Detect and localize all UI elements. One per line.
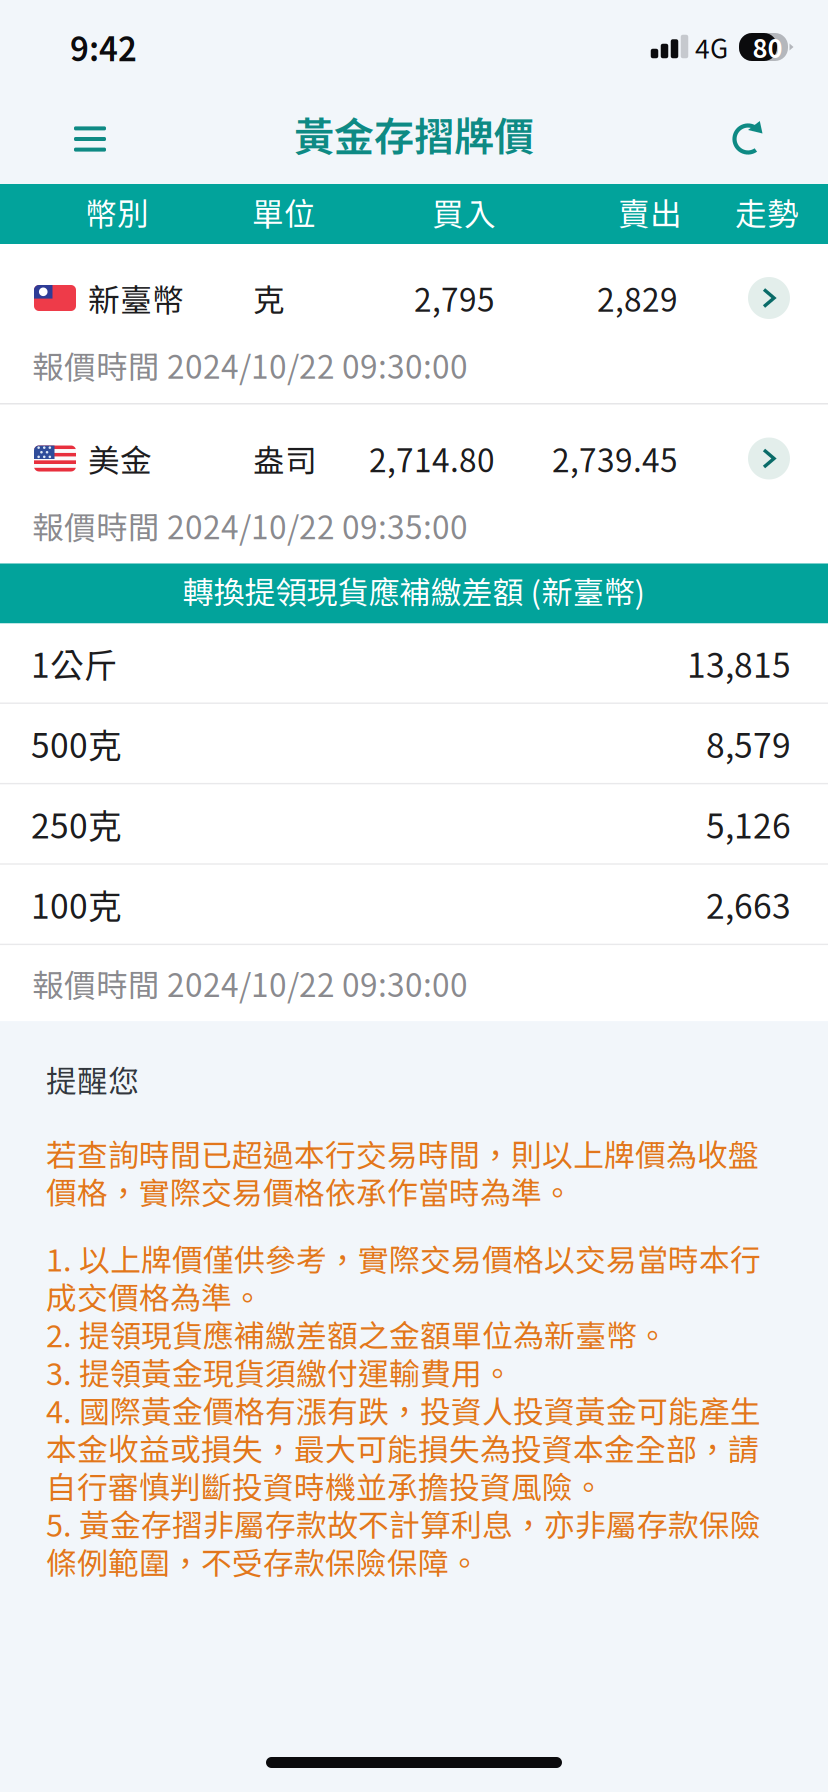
staticText: 轉換提領現貨應補繳差額 (新臺幣) (182, 568, 645, 613)
staticText: 9:42 (70, 23, 137, 70)
staticText: 單位 (252, 189, 316, 235)
staticText: 4G (695, 28, 728, 66)
staticText: 報價時間 2024/10/22 09:30:00 (32, 342, 468, 388)
staticText: 2,829 (597, 275, 678, 321)
staticText: 走勢 (735, 189, 799, 235)
staticText: 美金 (88, 436, 152, 481)
staticText: 250克 (31, 799, 122, 848)
staticText: 8,579 (706, 719, 791, 768)
staticText: 克 (253, 275, 285, 321)
staticText: 買入 (432, 189, 496, 235)
staticText: 賣出 (618, 189, 682, 235)
staticText: 100克 (31, 880, 122, 929)
staticText: 13,815 (687, 639, 791, 687)
staticText: 5,126 (706, 799, 791, 848)
staticText: 黃金存摺牌價 (294, 105, 534, 163)
staticText: 2,739.45 (552, 436, 678, 481)
staticText: 新臺幣 (88, 275, 184, 321)
button[interactable]: 新臺幣 (0, 244, 828, 403)
staticText: 1公斤 (31, 639, 118, 687)
staticText: 報價時間 2024/10/22 09:35:00 (32, 503, 468, 548)
button[interactable]: Menu (50, 94, 130, 184)
staticText: 盎司 (253, 436, 317, 481)
staticText: 提醒您 (46, 1057, 139, 1101)
staticText: 報價時間 2024/10/22 09:30:00 (32, 960, 468, 1006)
staticText: 80 (752, 29, 782, 65)
staticText: 2,795 (414, 275, 495, 321)
staticText: 幣別 (85, 189, 149, 235)
button[interactable]: 美金 (0, 404, 828, 563)
staticText: 2,714.80 (369, 436, 495, 481)
staticText: 500克 (31, 719, 122, 768)
staticText: 1. 以上牌價僅供參考，實際交易價格以交易當時本行成交價格為準。 2. 提領現貨… (46, 1239, 761, 1580)
button[interactable]: Refresh (708, 94, 788, 184)
staticText: 若查詢時間已超過本行交易時間，則以上牌價為收盤價格，實際交易價格依承作當時為準。 (46, 1134, 759, 1210)
staticText: 2,663 (706, 880, 791, 929)
